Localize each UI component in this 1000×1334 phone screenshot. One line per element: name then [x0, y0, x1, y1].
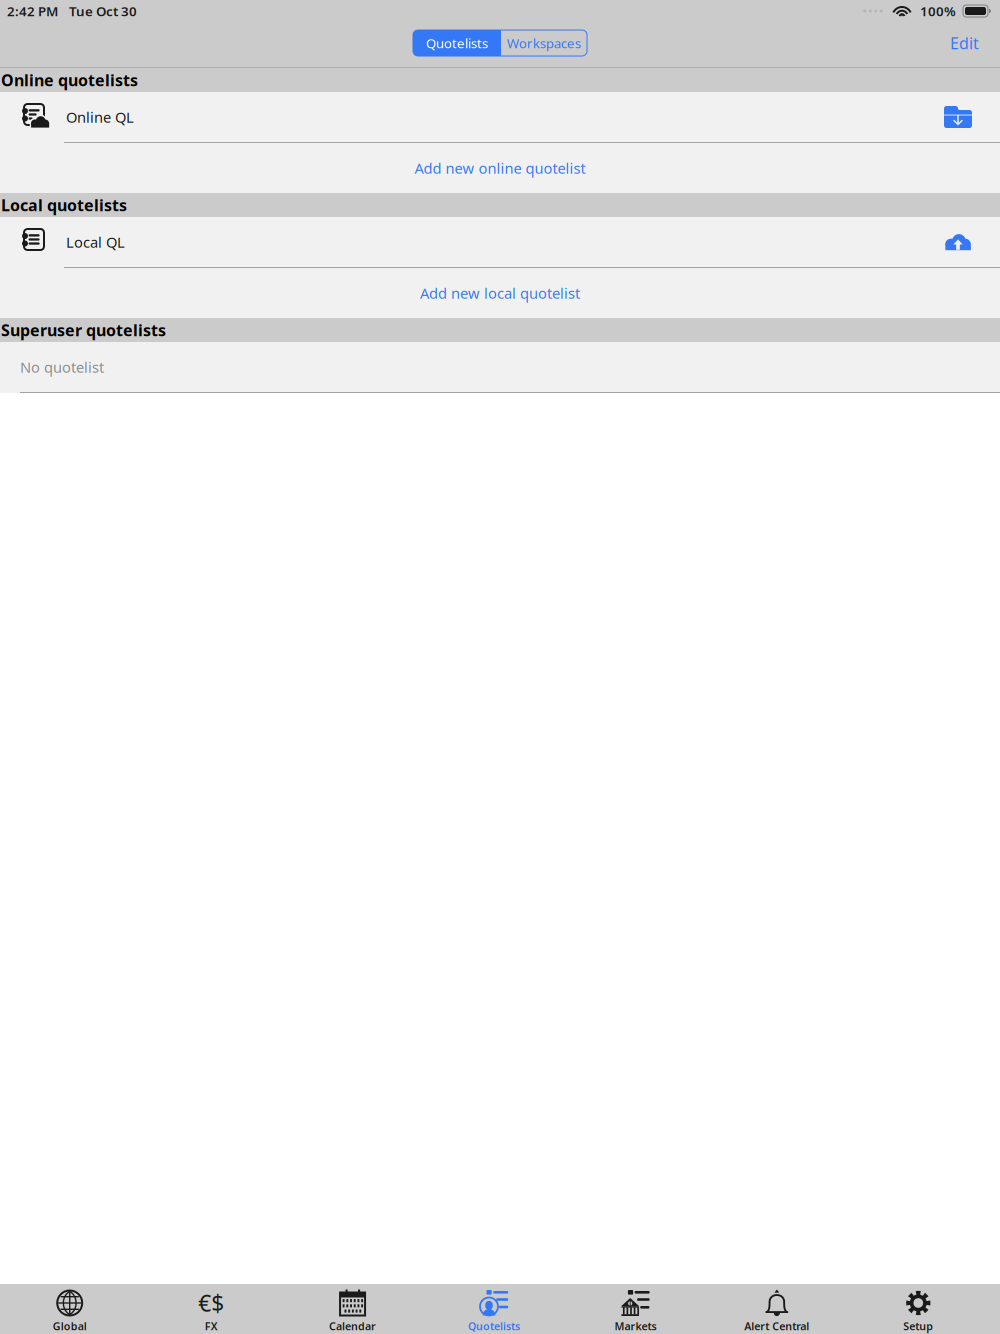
button[interactable]: Add new local quotelist — [0, 268, 1000, 318]
button[interactable]: Setup tab — [848, 1284, 989, 1334]
staticText: 2:42 PM — [7, 2, 58, 20]
staticText: Local quotelists — [1, 194, 127, 216]
staticText: Add new local quotelist — [420, 283, 580, 303]
staticText: FX — [205, 1319, 218, 1333]
button[interactable]: Global tab — [0, 1284, 140, 1334]
staticText: Alert Central — [744, 1319, 809, 1333]
staticText: Online QL — [66, 107, 134, 127]
staticText: Workspaces — [507, 34, 581, 52]
staticText: Local QL — [66, 232, 125, 252]
staticText: Setup — [903, 1319, 933, 1333]
staticText: Calendar — [329, 1319, 376, 1333]
button[interactable]: Online QL — [0, 92, 1000, 143]
staticText: Edit — [950, 32, 979, 54]
staticText: 100% — [920, 2, 956, 20]
staticText: Markets — [614, 1319, 656, 1333]
button[interactable]: Quotelists tab — [423, 1284, 565, 1334]
button[interactable]: Workspaces — [501, 30, 587, 56]
staticText: €$ — [198, 1288, 224, 1318]
button[interactable]: Markets tab — [565, 1284, 706, 1334]
staticText: Tue Oct 30 — [69, 2, 137, 20]
staticText: Quotelists — [426, 34, 488, 52]
staticText: Add new online quotelist — [414, 158, 585, 178]
button[interactable]: Local QL — [0, 217, 1000, 268]
staticText: No quotelist — [20, 357, 104, 377]
staticText: Quotelists — [468, 1319, 520, 1333]
button[interactable]: Alert Central tab — [706, 1284, 847, 1334]
button[interactable]: Calendar tab — [282, 1284, 423, 1334]
staticText: Global — [53, 1319, 87, 1333]
button[interactable]: Quotelists — [413, 30, 501, 56]
button[interactable]: Add new online quotelist — [0, 143, 1000, 193]
staticText: Superuser quotelists — [1, 319, 166, 341]
button[interactable]: Edit — [940, 24, 989, 62]
button[interactable]: FX tab — [140, 1284, 282, 1334]
staticText: Online quotelists — [1, 69, 138, 91]
